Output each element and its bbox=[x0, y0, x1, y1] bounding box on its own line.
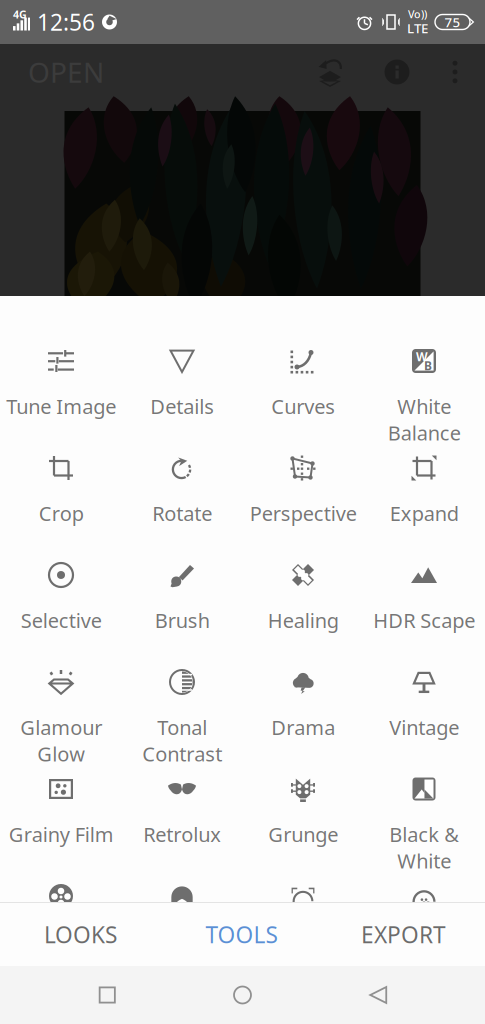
button[interactable]: Grunge bbox=[242, 724, 363, 831]
staticText: 75 bbox=[444, 13, 460, 31]
button[interactable]: Brush bbox=[121, 510, 242, 617]
button[interactable]: Selective bbox=[0, 510, 121, 617]
staticText: Drama bbox=[271, 714, 335, 741]
button[interactable]: Revisions bbox=[313, 44, 347, 100]
staticText: Rotate bbox=[152, 500, 212, 527]
staticText: Brush bbox=[154, 607, 209, 634]
button[interactable]: HDR Scape bbox=[363, 510, 484, 617]
button[interactable]: Vintage bbox=[363, 617, 484, 724]
staticText: Black & White bbox=[389, 821, 459, 874]
staticText: Curves bbox=[271, 393, 335, 420]
button[interactable]: Home bbox=[214, 966, 270, 1024]
staticText: Grunge bbox=[268, 821, 338, 848]
button[interactable]: TOOLS bbox=[161, 903, 322, 966]
button[interactable]: Black & White bbox=[363, 724, 484, 831]
staticText: HDR Scape bbox=[373, 607, 475, 634]
button[interactable]: Retrolux bbox=[121, 724, 242, 831]
button[interactable] bbox=[121, 831, 242, 938]
staticText: OPEN bbox=[28, 53, 104, 91]
staticText: Grainy Film bbox=[8, 821, 113, 848]
staticText: W bbox=[416, 348, 428, 364]
staticText: Details bbox=[150, 393, 214, 420]
staticText: Expand bbox=[389, 500, 458, 527]
button[interactable]: Details bbox=[121, 296, 242, 403]
staticText: Retrolux bbox=[143, 821, 221, 848]
button[interactable]: Perspective bbox=[242, 403, 363, 510]
staticText: TOOLS bbox=[205, 919, 277, 949]
staticText: B bbox=[424, 357, 432, 373]
button[interactable]: Glamour Glow bbox=[0, 617, 121, 724]
staticText: 4G bbox=[13, 7, 27, 21]
button[interactable]: EXPORT bbox=[322, 903, 485, 966]
staticText: Perspective bbox=[249, 500, 356, 527]
button[interactable]: Crop bbox=[0, 403, 121, 510]
staticText: LOOKS bbox=[44, 919, 117, 949]
staticText: Glamour Glow bbox=[20, 714, 102, 767]
button[interactable]: Recents bbox=[79, 966, 135, 1024]
staticText: EXPORT bbox=[361, 919, 446, 949]
button[interactable]: Drama bbox=[242, 617, 363, 724]
staticText: Vintage bbox=[389, 714, 459, 741]
button[interactable]: Rotate bbox=[121, 403, 242, 510]
button[interactable]: Tune Image bbox=[0, 296, 121, 403]
staticText: Tune Image bbox=[6, 393, 116, 420]
button[interactable] bbox=[242, 831, 363, 938]
button[interactable]: Info bbox=[380, 44, 414, 100]
staticText: Selective bbox=[20, 607, 101, 634]
button[interactable] bbox=[363, 831, 484, 938]
staticText: LTE bbox=[407, 19, 428, 37]
staticText: Vo)) bbox=[408, 7, 427, 21]
button[interactable]: Grainy Film bbox=[0, 724, 121, 831]
button[interactable]: Curves bbox=[242, 296, 363, 403]
staticText: 12:56 bbox=[37, 7, 95, 37]
staticText: Tonal Contrast bbox=[142, 714, 222, 767]
button[interactable]: Expand bbox=[363, 403, 484, 510]
button[interactable]: Healing bbox=[242, 510, 363, 617]
staticText: Crop bbox=[38, 500, 83, 527]
staticText: White Balance bbox=[387, 393, 460, 446]
button[interactable]: Tonal Contrast bbox=[121, 617, 242, 724]
button[interactable]: LOOKS bbox=[0, 903, 161, 966]
button[interactable]: OPEN bbox=[28, 44, 104, 100]
staticText: Healing bbox=[267, 607, 338, 634]
button[interactable]: W bbox=[363, 296, 484, 403]
button[interactable] bbox=[0, 831, 121, 938]
button[interactable]: Back bbox=[350, 966, 406, 1024]
